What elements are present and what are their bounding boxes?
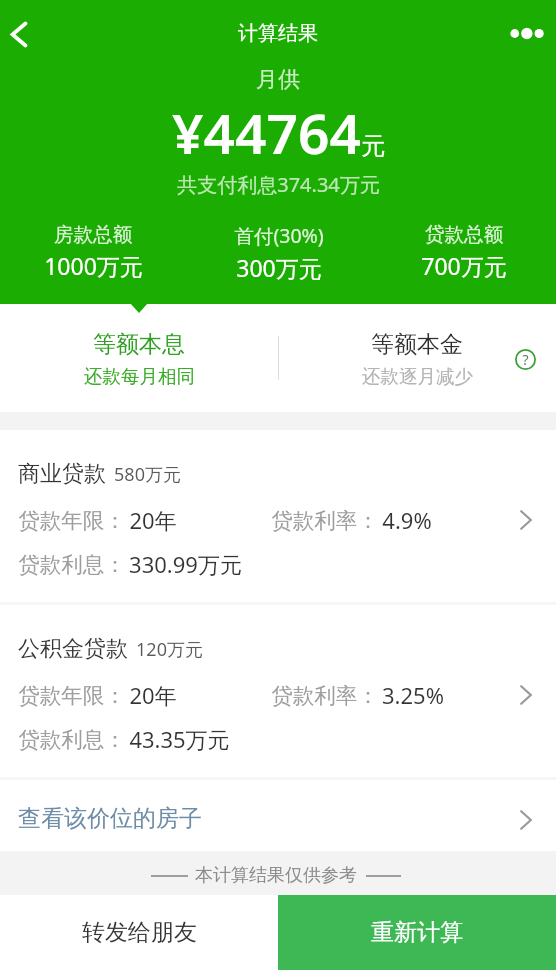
button[interactable]: 查看该价位的房子 [0, 780, 556, 851]
staticText: 300万元 [236, 252, 322, 283]
staticText: 等额本金 [371, 330, 463, 359]
staticText: 20年 [129, 505, 177, 535]
staticText: 查看该价位的房子 [18, 804, 202, 833]
staticText: 330.99万元 [129, 549, 242, 579]
staticText: 本计算结果仅供参考 [195, 864, 357, 887]
staticText: 3.25% [382, 680, 444, 710]
staticText: 共支付利息374.34万元 [177, 171, 380, 198]
staticText: 700万元 [421, 250, 507, 281]
staticText: 计算结果 [238, 21, 318, 46]
staticText: 还款每月相同 [84, 365, 195, 388]
button[interactable]: 商业贷款 [0, 430, 556, 602]
button[interactable]: 等额本金 [278, 304, 556, 412]
staticText: ¥44764 [172, 95, 361, 170]
staticText: 20年 [129, 680, 177, 710]
staticText: 首付(30%) [234, 222, 324, 249]
staticText: ? [522, 350, 529, 369]
staticText: 贷款利率： [271, 682, 379, 709]
button[interactable]: Help [505, 339, 545, 379]
button[interactable]: 等额本息 [0, 304, 278, 412]
staticText: 贷款年限： [18, 682, 126, 709]
staticText: 580万元 [114, 462, 181, 487]
button[interactable]: Back [0, 6, 47, 62]
staticText: 等额本息 [93, 330, 185, 359]
staticText: 贷款利率： [271, 507, 379, 534]
button[interactable]: 重新计算 [278, 895, 556, 970]
staticText: 贷款年限： [18, 507, 126, 534]
staticText: 1000万元 [44, 250, 143, 281]
staticText: 贷款利息： [18, 551, 126, 578]
staticText: 4.9% [382, 505, 432, 535]
button[interactable]: 公积金贷款 [0, 605, 556, 777]
staticText: 重新计算 [371, 918, 463, 947]
staticText: 房款总额 [54, 222, 132, 247]
staticText: 还款逐月减少 [362, 365, 473, 388]
staticText: 商业贷款 [18, 460, 106, 488]
staticText: 43.35万元 [129, 724, 230, 754]
staticText: 公积金贷款 [18, 635, 128, 663]
button[interactable]: More options [500, 0, 556, 66]
staticText: 元 [361, 131, 385, 161]
staticText: 贷款总额 [425, 222, 503, 247]
staticText: 贷款利息： [18, 726, 126, 753]
staticText: 120万元 [136, 637, 203, 662]
staticText: 月供 [256, 66, 300, 94]
staticText: 转发给朋友 [82, 918, 197, 947]
button[interactable]: 转发给朋友 [0, 895, 278, 970]
